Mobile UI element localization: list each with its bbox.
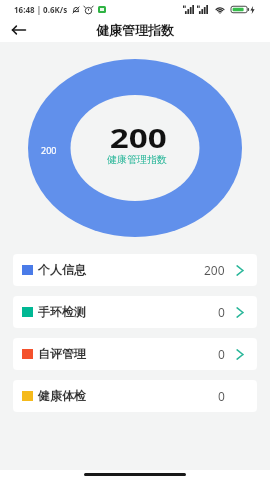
staticText: 自评管理: [38, 346, 86, 361]
staticText: 200: [41, 144, 57, 156]
staticText: 200: [110, 120, 167, 155]
button[interactable]: 手环检测: [13, 296, 257, 328]
staticText: 手环检测: [38, 304, 86, 319]
staticText: 0: [218, 346, 225, 362]
button[interactable]: 自评管理: [13, 338, 257, 370]
button[interactable]: Back: [7, 18, 31, 42]
staticText: 个人信息: [38, 262, 86, 277]
staticText: 0: [218, 304, 225, 320]
staticText: 健康体检: [38, 388, 86, 403]
button[interactable]: 个人信息: [13, 254, 257, 286]
staticText: 0: [218, 388, 225, 404]
staticText: 16:48 | 0.6K/s: [14, 4, 68, 15]
staticText: 200: [204, 262, 225, 278]
staticText: 健康管理指数: [107, 153, 167, 166]
button[interactable]: 健康体检: [13, 380, 257, 412]
staticText: 健康管理指数: [96, 22, 174, 38]
